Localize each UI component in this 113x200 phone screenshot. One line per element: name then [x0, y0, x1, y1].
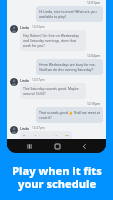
staticText: 12:04pm	[87, 54, 101, 58]
staticText: Play when it fits your schedule	[12, 163, 102, 191]
staticText: Linda	[20, 126, 30, 130]
button[interactable]: Linda	[10, 78, 103, 99]
button[interactable]: That sounds good 👍 Shall we meet at cour…	[36, 107, 103, 123]
staticText: Hmm Wednesdays are busy for me. Shall we…	[39, 62, 100, 72]
staticText: Yes perfect, see you there 🎾	[23, 134, 69, 136]
staticText: Hi Linda, nice to meet! What are you ava…	[39, 9, 100, 19]
staticText: Linda	[20, 78, 30, 82]
staticText: Hey Robert! I'm free on Wednesday and Sa…	[23, 33, 83, 48]
button[interactable]: Home	[51, 140, 63, 152]
button[interactable]: Hmm Wednesdays are busy for me. Shall we…	[36, 59, 103, 75]
button[interactable]: Recents	[23, 140, 35, 152]
staticText: That sounds good 👍 Shall we meet at cour…	[39, 110, 100, 120]
staticText: 12:07pm	[32, 78, 45, 82]
button[interactable]: Back	[78, 140, 90, 152]
button[interactable]: Linda	[10, 126, 103, 139]
staticText: 12:47pm	[32, 126, 45, 130]
staticText: This Saturday sounds good. Maybe around …	[23, 86, 83, 96]
staticText: 12:01pm	[87, 1, 101, 5]
button[interactable]: Linda	[10, 25, 103, 51]
staticText: Linda	[20, 25, 30, 29]
staticText: 12:03pm	[32, 25, 45, 29]
staticText: 12:10pm	[87, 102, 101, 106]
button[interactable]: Hi Linda, nice to meet! What are you ava…	[36, 6, 103, 22]
